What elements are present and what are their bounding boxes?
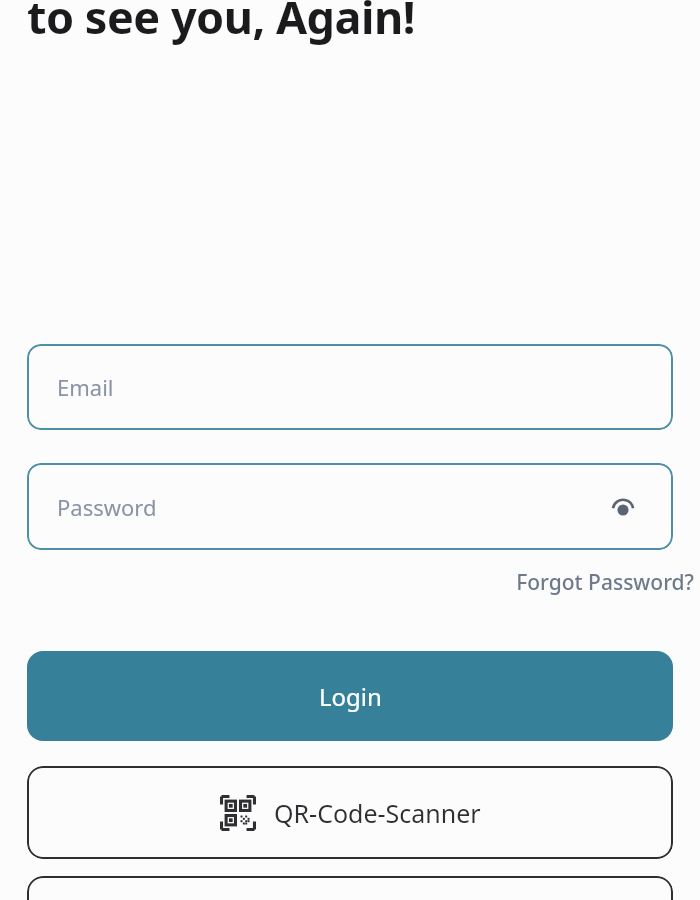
staticText: Login (319, 680, 382, 713)
staticText: to see you, Again! (27, 0, 415, 47)
button[interactable]: Password (27, 463, 673, 550)
button[interactable] (27, 876, 673, 900)
staticText: Password (57, 492, 157, 522)
button[interactable]: Forgot Password? (510, 564, 700, 601)
button[interactable]: QR-Code-Scanner (27, 766, 673, 859)
button[interactable]: Email (27, 344, 673, 430)
staticText: Forgot Password? (516, 568, 694, 597)
staticText: Email (57, 372, 114, 402)
staticText: QR-Code-Scanner (274, 796, 481, 830)
button[interactable]: Show password (603, 487, 643, 527)
button[interactable]: Login (27, 651, 673, 741)
